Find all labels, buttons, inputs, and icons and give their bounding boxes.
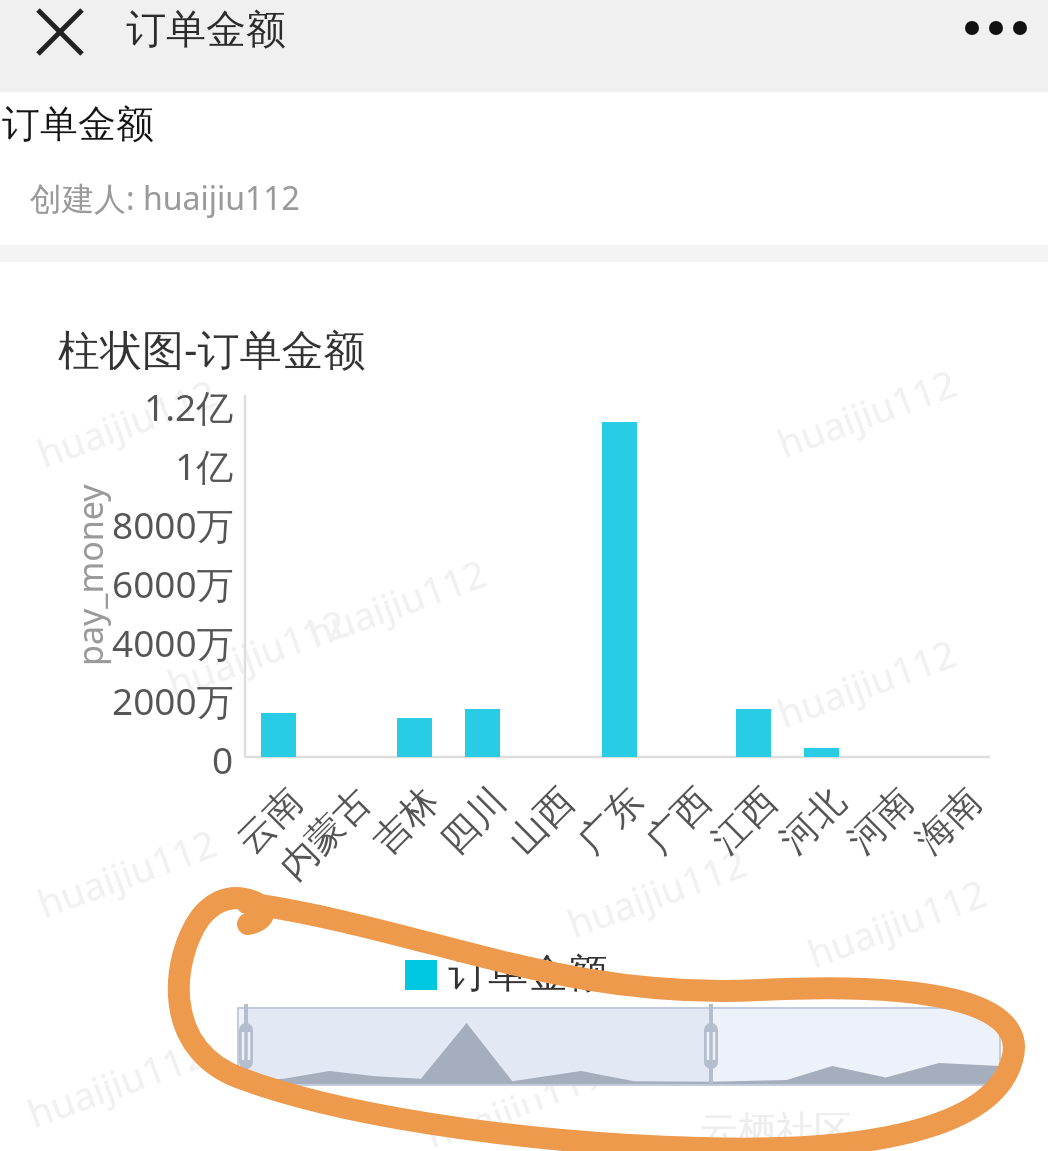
button[interactable]: Close [24,0,96,64]
button[interactable]: More options [950,0,1034,60]
